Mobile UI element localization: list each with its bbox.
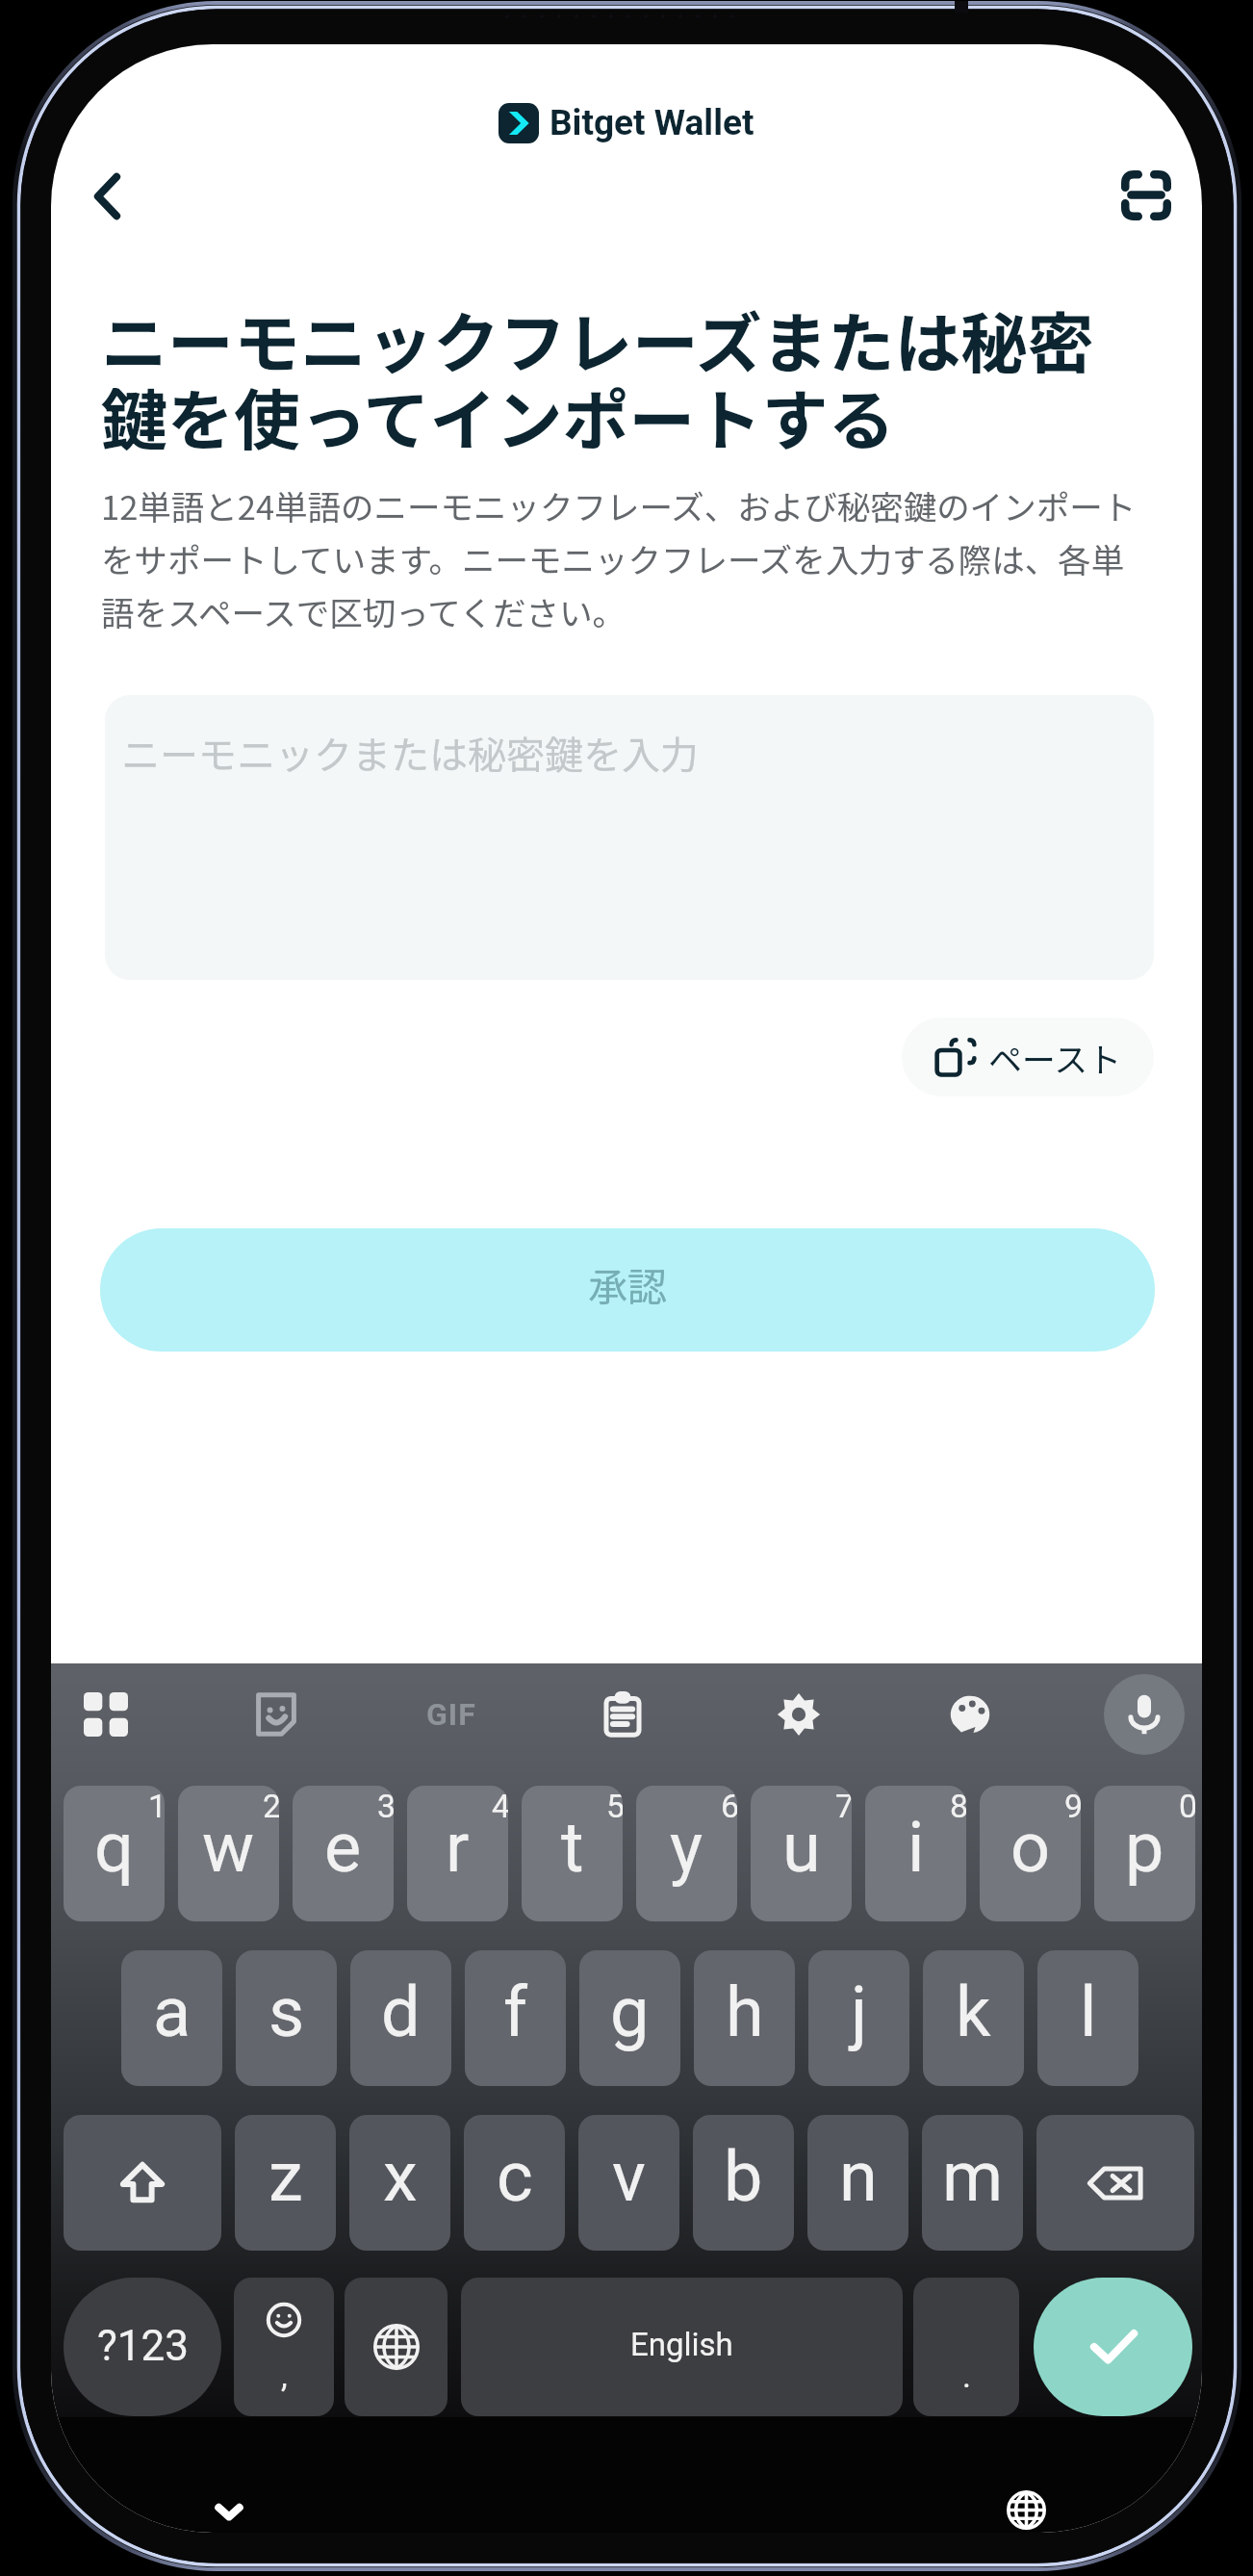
button[interactable]: o bbox=[980, 1786, 1081, 1921]
staticText: 9 bbox=[1064, 1787, 1081, 1825]
button[interactable]: Settings bbox=[769, 1685, 829, 1744]
staticText: c bbox=[497, 2136, 533, 2217]
staticText: a bbox=[153, 1971, 192, 2052]
staticText: y bbox=[670, 1807, 703, 1888]
staticText: , bbox=[281, 2357, 288, 2395]
button[interactable]: 承認 bbox=[100, 1228, 1155, 1352]
staticText: 2 bbox=[263, 1787, 279, 1825]
staticText: 4 bbox=[492, 1787, 508, 1825]
button[interactable]: a bbox=[121, 1950, 222, 2086]
button[interactable]: GIF bbox=[422, 1686, 480, 1743]
button[interactable]: . bbox=[913, 2278, 1019, 2416]
button[interactable]: l bbox=[1037, 1950, 1138, 2086]
button[interactable]: f bbox=[465, 1950, 566, 2086]
button[interactable]: Change language bbox=[984, 2467, 1068, 2533]
button[interactable]: Hide keyboard bbox=[187, 2468, 271, 2533]
button[interactable]: Stickers bbox=[246, 1685, 306, 1744]
staticText: h bbox=[726, 1971, 764, 2052]
button[interactable]: n bbox=[807, 2115, 908, 2251]
staticText: 6 bbox=[721, 1787, 737, 1825]
button[interactable]: ペースト bbox=[902, 1018, 1154, 1096]
button[interactable]: p bbox=[1094, 1786, 1195, 1921]
staticText: g bbox=[610, 1971, 650, 2052]
button[interactable]: g bbox=[579, 1950, 680, 2086]
button[interactable]: v bbox=[578, 2115, 679, 2251]
button[interactable]: s bbox=[236, 1950, 337, 2086]
staticText: 7 bbox=[835, 1787, 852, 1825]
staticText: u bbox=[782, 1807, 821, 1888]
button[interactable]: u bbox=[751, 1786, 852, 1921]
button[interactable]: Switch language bbox=[345, 2278, 447, 2416]
staticText: 5 bbox=[606, 1787, 623, 1825]
staticText: ペースト bbox=[988, 1033, 1122, 1082]
button[interactable]: Backspace bbox=[1036, 2115, 1194, 2251]
staticText: ?123 bbox=[97, 2321, 189, 2371]
button[interactable]: Back bbox=[64, 154, 149, 239]
staticText: v bbox=[612, 2136, 646, 2217]
staticText: ニーモニックフレーズまたは秘密鍵を使ってインポートする bbox=[101, 291, 1156, 464]
button[interactable]: i bbox=[865, 1786, 966, 1921]
staticText: n bbox=[839, 2136, 878, 2217]
staticText: 8 bbox=[950, 1787, 966, 1825]
staticText: English bbox=[630, 2326, 733, 2363]
staticText: k bbox=[956, 1971, 991, 2052]
staticText: b bbox=[724, 2136, 763, 2217]
button[interactable]: Apps bbox=[76, 1685, 136, 1744]
staticText: f bbox=[503, 1971, 528, 2052]
button[interactable]: Scan QR code bbox=[1104, 153, 1189, 238]
staticText: r bbox=[446, 1807, 470, 1888]
staticText: z bbox=[268, 2136, 303, 2217]
button[interactable]: x bbox=[349, 2115, 450, 2251]
staticText: GIF bbox=[426, 1696, 476, 1733]
button[interactable]: k bbox=[923, 1950, 1024, 2086]
button[interactable]: Shift bbox=[64, 2115, 221, 2251]
button[interactable]: ニーモニックまたは秘密鍵を入力 bbox=[105, 695, 1154, 980]
button[interactable]: y bbox=[636, 1786, 737, 1921]
staticText: e bbox=[324, 1807, 362, 1888]
button[interactable]: j bbox=[808, 1950, 909, 2086]
button[interactable]: Emoji bbox=[234, 2278, 334, 2416]
staticText: q bbox=[94, 1807, 134, 1888]
staticText: 3 bbox=[377, 1787, 394, 1825]
staticText: i bbox=[908, 1807, 925, 1888]
staticText: j bbox=[851, 1971, 868, 2052]
button[interactable]: Voice input bbox=[1104, 1674, 1185, 1755]
button[interactable]: m bbox=[922, 2115, 1023, 2251]
button[interactable]: b bbox=[693, 2115, 794, 2251]
staticText: o bbox=[1010, 1807, 1051, 1888]
button[interactable]: e bbox=[293, 1786, 394, 1921]
staticText: d bbox=[381, 1971, 421, 2052]
button[interactable]: Clipboard bbox=[593, 1685, 652, 1744]
button[interactable]: c bbox=[464, 2115, 565, 2251]
staticText: s bbox=[268, 1971, 305, 2052]
button[interactable]: w bbox=[178, 1786, 279, 1921]
button[interactable]: d bbox=[350, 1950, 451, 2086]
staticText: . bbox=[962, 2357, 971, 2395]
button[interactable]: Theme bbox=[940, 1685, 1000, 1744]
button[interactable]: r bbox=[407, 1786, 508, 1921]
staticText: p bbox=[1125, 1807, 1164, 1888]
staticText: ニーモニックまたは秘密鍵を入力 bbox=[121, 725, 699, 781]
staticText: 承認 bbox=[588, 1255, 667, 1312]
button[interactable]: h bbox=[694, 1950, 795, 2086]
button[interactable]: ?123 bbox=[64, 2278, 221, 2416]
staticText: 1 bbox=[148, 1787, 165, 1825]
button[interactable]: Enter bbox=[1034, 2278, 1192, 2416]
staticText: 12単語と24単語のニーモニックフレーズ、および秘密鍵のインポートをサポートして… bbox=[101, 481, 1150, 635]
button[interactable]: English bbox=[461, 2278, 903, 2416]
staticText: x bbox=[383, 2136, 418, 2217]
button[interactable]: q bbox=[64, 1786, 165, 1921]
staticText: t bbox=[561, 1807, 584, 1888]
staticText: m bbox=[942, 2136, 1004, 2217]
button[interactable]: t bbox=[522, 1786, 623, 1921]
button[interactable]: z bbox=[235, 2115, 336, 2251]
staticText: 0 bbox=[1179, 1787, 1195, 1825]
staticText: w bbox=[202, 1807, 255, 1888]
staticText: Bitget Wallet bbox=[550, 102, 754, 143]
staticText: l bbox=[1080, 1971, 1097, 2052]
